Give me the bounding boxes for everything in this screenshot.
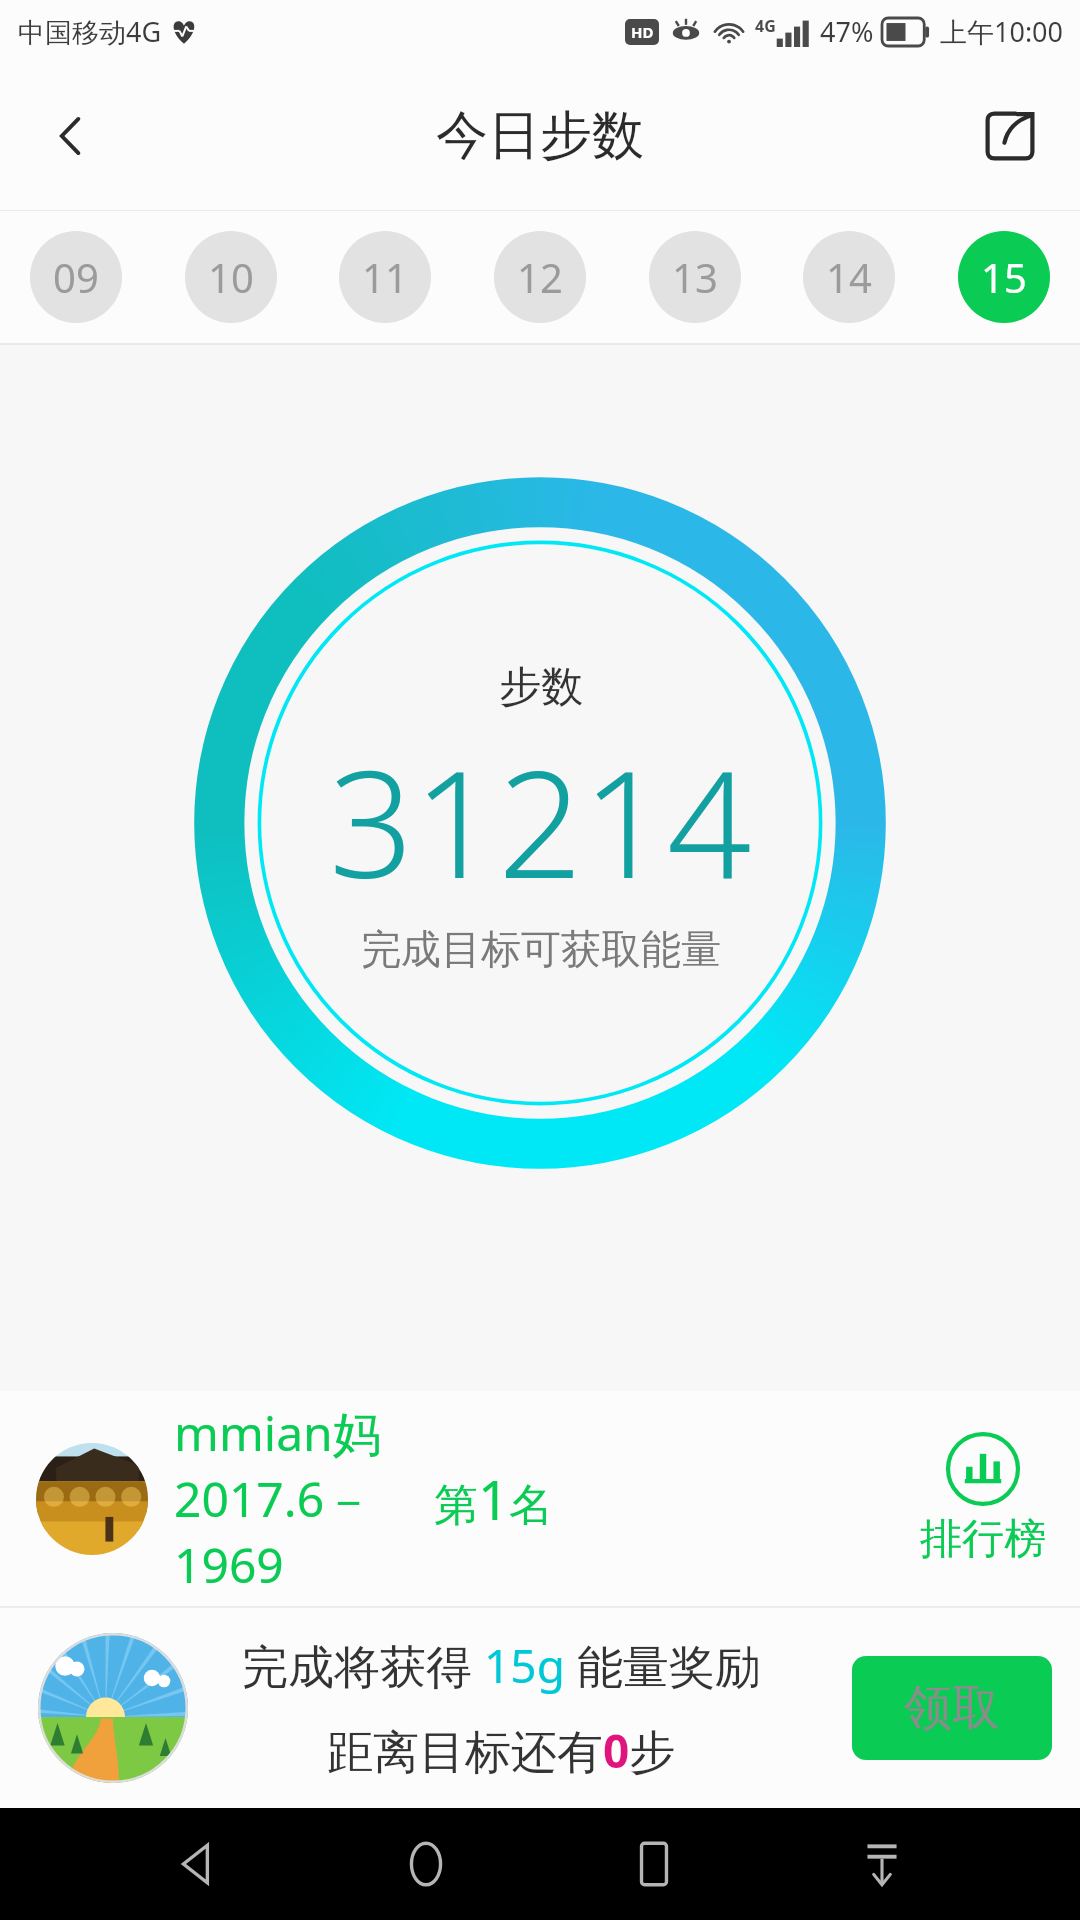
- staticText: 完成目标可获取能量: [361, 924, 721, 974]
- button[interactable]: 10: [185, 231, 277, 323]
- staticText: HD: [631, 22, 654, 42]
- staticText: 第1名: [434, 1462, 553, 1536]
- button[interactable]: Home: [378, 1816, 474, 1912]
- button[interactable]: Back: [28, 93, 114, 179]
- staticText: 中国移动4G: [18, 13, 162, 50]
- button[interactable]: Back: [150, 1816, 246, 1912]
- staticText: 完成将获得 15g 能量奖励: [242, 1634, 761, 1697]
- staticText: 10: [208, 250, 254, 304]
- staticText: 13: [672, 250, 718, 304]
- staticText: 31214: [329, 720, 752, 922]
- staticText: 15: [981, 250, 1027, 304]
- button[interactable]: 15: [958, 231, 1050, 323]
- button[interactable]: mmian妈: [0, 1391, 1080, 1606]
- staticText: 14: [826, 250, 872, 304]
- staticText: 1969: [174, 1532, 284, 1597]
- button[interactable]: 13: [649, 231, 741, 323]
- button[interactable]: Notifications: [834, 1816, 930, 1912]
- button[interactable]: 排行榜: [912, 1427, 1054, 1570]
- staticText: 步数: [499, 661, 583, 714]
- staticText: 领取: [904, 1678, 1000, 1738]
- button[interactable]: 领取: [852, 1656, 1052, 1760]
- staticText: 2017.6－: [174, 1466, 373, 1532]
- staticText: 12: [517, 250, 563, 304]
- staticText: 排行榜: [920, 1513, 1046, 1566]
- button[interactable]: Share: [966, 92, 1054, 180]
- staticText: mmian妈: [174, 1400, 381, 1466]
- button[interactable]: 12: [494, 231, 586, 323]
- button[interactable]: 11: [339, 231, 431, 323]
- staticText: 距离目标还有0步: [327, 1719, 676, 1782]
- staticText: 47%: [820, 13, 874, 50]
- staticText: 今日步数: [436, 103, 644, 169]
- button[interactable]: Energy: [38, 1633, 188, 1783]
- staticText: 09: [53, 250, 99, 304]
- staticText: 上午10:00: [940, 13, 1064, 50]
- button[interactable]: Recent apps: [606, 1816, 702, 1912]
- button[interactable]: 09: [30, 231, 122, 323]
- staticText: 4G: [755, 15, 776, 37]
- staticText: 11: [362, 250, 408, 304]
- button[interactable]: 14: [803, 231, 895, 323]
